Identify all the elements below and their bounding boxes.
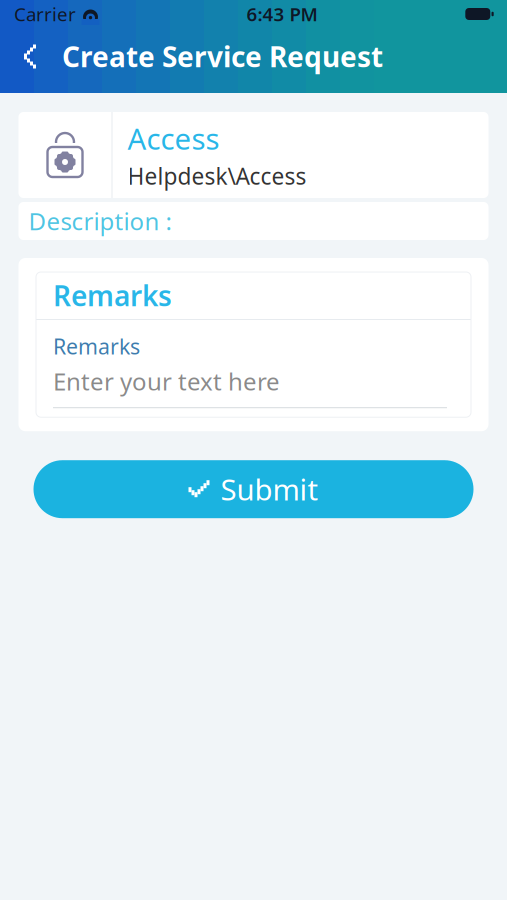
staticText: Enter your text here [53,365,280,397]
staticText: Remarks [53,277,172,314]
staticText: Helpdesk\Access [127,161,306,191]
staticText: Remarks [53,332,140,360]
staticText: Description : [28,205,171,237]
staticText: Carrier [14,2,76,26]
staticText: 6:43 PM [246,2,317,26]
staticText: Create Service Request [62,38,383,75]
staticText: Access [127,119,219,158]
button[interactable]: Submit [33,460,473,518]
button[interactable]: Back [10,34,50,78]
staticText: Submit [220,470,318,509]
